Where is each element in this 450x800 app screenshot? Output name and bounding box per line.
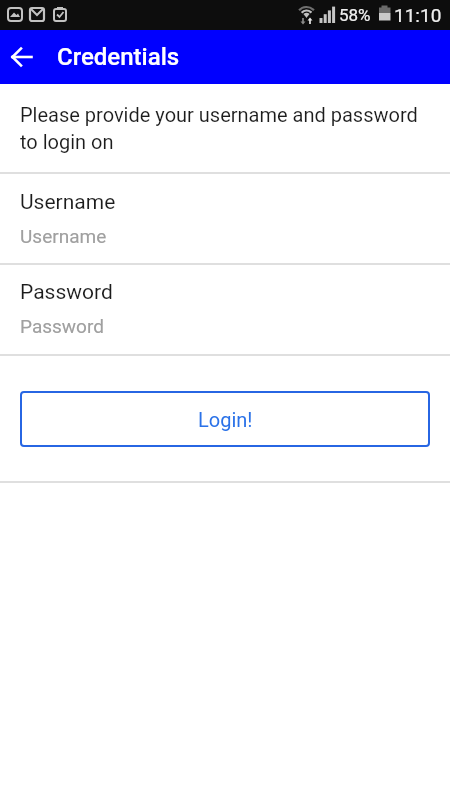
staticText: Please provide your username and passwor… [20,103,430,154]
staticText: Password [20,315,104,337]
staticText: 58% [339,5,371,25]
staticText: Username [20,225,107,247]
staticText: Username [20,190,116,215]
staticText: Credentials [57,43,180,71]
staticText: 11:10 [394,4,442,26]
staticText: Login! [198,408,253,431]
button[interactable] [0,35,44,79]
staticText: Password [20,280,113,305]
button[interactable]: Login! [20,391,430,447]
